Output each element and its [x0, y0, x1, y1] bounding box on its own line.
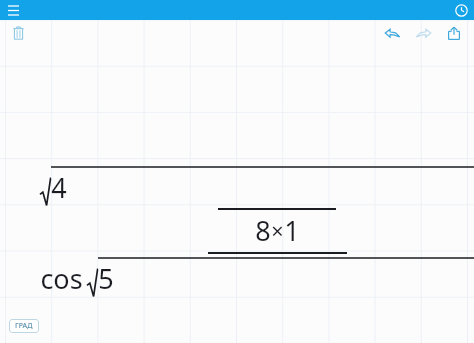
staticText: cos [40, 260, 83, 297]
button[interactable]: Delete [6, 21, 30, 45]
button[interactable]: Menu [0, 0, 26, 20]
button[interactable]: ГРАД [9, 319, 39, 333]
button[interactable]: Redo [411, 21, 435, 45]
button[interactable]: Undo [380, 21, 404, 45]
button[interactable]: History [448, 0, 474, 20]
staticText: 1 [284, 212, 300, 249]
staticText: × [271, 216, 284, 245]
staticText: ГРАД [15, 321, 33, 331]
staticText: 5 [98, 260, 114, 297]
staticText: 4 [51, 169, 67, 206]
button[interactable]: Share [442, 21, 466, 45]
staticText: 8 [255, 212, 271, 249]
